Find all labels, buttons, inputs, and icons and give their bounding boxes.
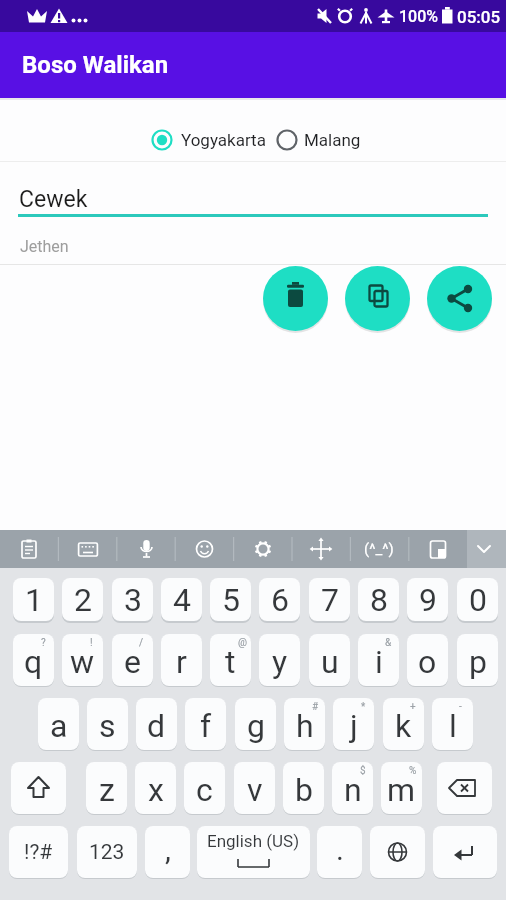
staticText: !?# [24,840,53,865]
button[interactable] [18,170,488,218]
button[interactable]: q [13,634,54,686]
button[interactable]: 4 [161,578,202,621]
staticText: 6 [271,581,289,619]
button[interactable] [433,826,497,878]
staticText: k [395,707,412,745]
staticText: r [176,643,187,681]
staticText: English (US) [207,831,300,851]
button[interactable]: u [309,634,350,686]
staticText: * [361,701,366,713]
button[interactable] [263,266,328,331]
button[interactable]: o [407,634,448,686]
button[interactable]: i [358,634,399,686]
button[interactable]: w [62,634,103,686]
button[interactable]: x [135,762,176,814]
staticText: 123 [89,840,125,865]
button[interactable]: 123 [77,826,137,878]
staticText: 5 [222,581,240,619]
button[interactable]: m [381,762,422,814]
button[interactable] [148,124,272,156]
button[interactable] [58,530,116,568]
button[interactable]: t [210,634,251,686]
button[interactable]: 2 [62,578,103,621]
button[interactable]: English (US) [197,826,310,878]
staticText: & [385,637,392,649]
button[interactable]: z [86,762,127,814]
staticText: 8 [370,581,388,619]
staticText: n [344,771,362,809]
staticText: g [247,707,265,745]
staticText: 9 [419,581,437,619]
button[interactable]: p [457,634,498,686]
button[interactable]: s [87,698,128,750]
button[interactable] [175,530,233,568]
staticText: 7 [321,581,339,619]
button[interactable]: k [383,698,424,750]
button[interactable] [0,530,58,568]
staticText: Cewek [19,186,88,213]
button[interactable]: !?# [9,826,68,878]
button[interactable] [117,530,175,568]
staticText: 1 [25,581,43,619]
button[interactable]: e [112,634,153,686]
button[interactable] [234,530,292,568]
button[interactable]: d [136,698,177,750]
button[interactable] [345,266,410,331]
staticText: a [50,707,68,745]
button[interactable]: l [432,698,473,750]
staticText: $ [360,765,366,777]
staticText: i [375,643,383,681]
button[interactable] [370,826,425,878]
staticText: % [409,765,417,777]
staticText: q [24,643,43,681]
button[interactable] [467,530,506,568]
staticText: j [350,707,358,745]
button[interactable]: 9 [407,578,448,621]
button[interactable]: n [332,762,373,814]
button[interactable]: g [235,698,276,750]
staticText: / [139,637,144,649]
button[interactable]: a [38,698,79,750]
button[interactable]: b [283,762,324,814]
staticText: ! [90,637,93,649]
button[interactable]: 3 [112,578,153,621]
button[interactable]: v [234,762,275,814]
staticText: ? [41,637,46,649]
button[interactable] [274,124,370,156]
staticText: b [295,771,313,809]
staticText: 0 [469,581,487,619]
staticText: y [272,643,288,681]
button[interactable]: y [259,634,300,686]
button[interactable] [11,762,66,814]
button[interactable]: j [333,698,374,750]
button[interactable]: 6 [259,578,300,621]
button[interactable] [350,530,408,568]
button[interactable]: 8 [358,578,399,621]
button[interactable] [409,530,467,568]
staticText: 2 [74,581,92,619]
staticText: . [336,832,344,867]
button[interactable]: 5 [210,578,251,621]
staticText: @ [238,637,247,649]
staticText: h [296,707,314,745]
button[interactable] [427,266,492,331]
button[interactable] [437,762,492,814]
button[interactable]: . [317,826,362,878]
button[interactable]: , [145,826,190,878]
staticText: u [321,643,339,681]
staticText: 100% [399,7,439,26]
button[interactable]: f [185,698,226,750]
staticText: Malang [304,130,361,150]
button[interactable] [292,530,350,568]
staticText: p [469,643,487,681]
staticText: c [196,771,213,809]
button[interactable]: c [184,762,225,814]
button[interactable]: 1 [13,578,54,621]
button[interactable]: r [161,634,202,686]
staticText: Jethen [20,237,69,256]
button[interactable]: 0 [457,578,498,621]
staticText: # [312,701,319,713]
button[interactable]: 7 [309,578,350,621]
staticText: v [247,771,263,809]
button[interactable]: h [284,698,325,750]
